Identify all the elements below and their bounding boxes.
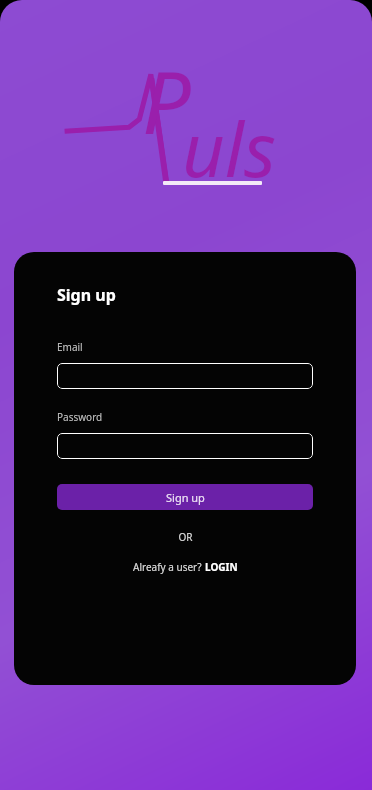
button[interactable]: Sign up	[57, 484, 313, 510]
button[interactable]: Email input	[57, 363, 313, 389]
staticText: Password	[57, 410, 103, 424]
staticText: uls	[182, 98, 276, 199]
staticText: Email	[57, 340, 83, 354]
button[interactable]: LOGIN	[205, 560, 238, 574]
button[interactable]: Password input	[57, 433, 313, 459]
staticText: Alreafy a user?	[133, 560, 205, 574]
staticText: LOGIN	[205, 560, 238, 574]
staticText: P	[142, 42, 191, 159]
staticText: OR	[178, 530, 193, 544]
staticText: Sign up	[166, 490, 205, 505]
staticText: Sign up	[57, 284, 116, 306]
